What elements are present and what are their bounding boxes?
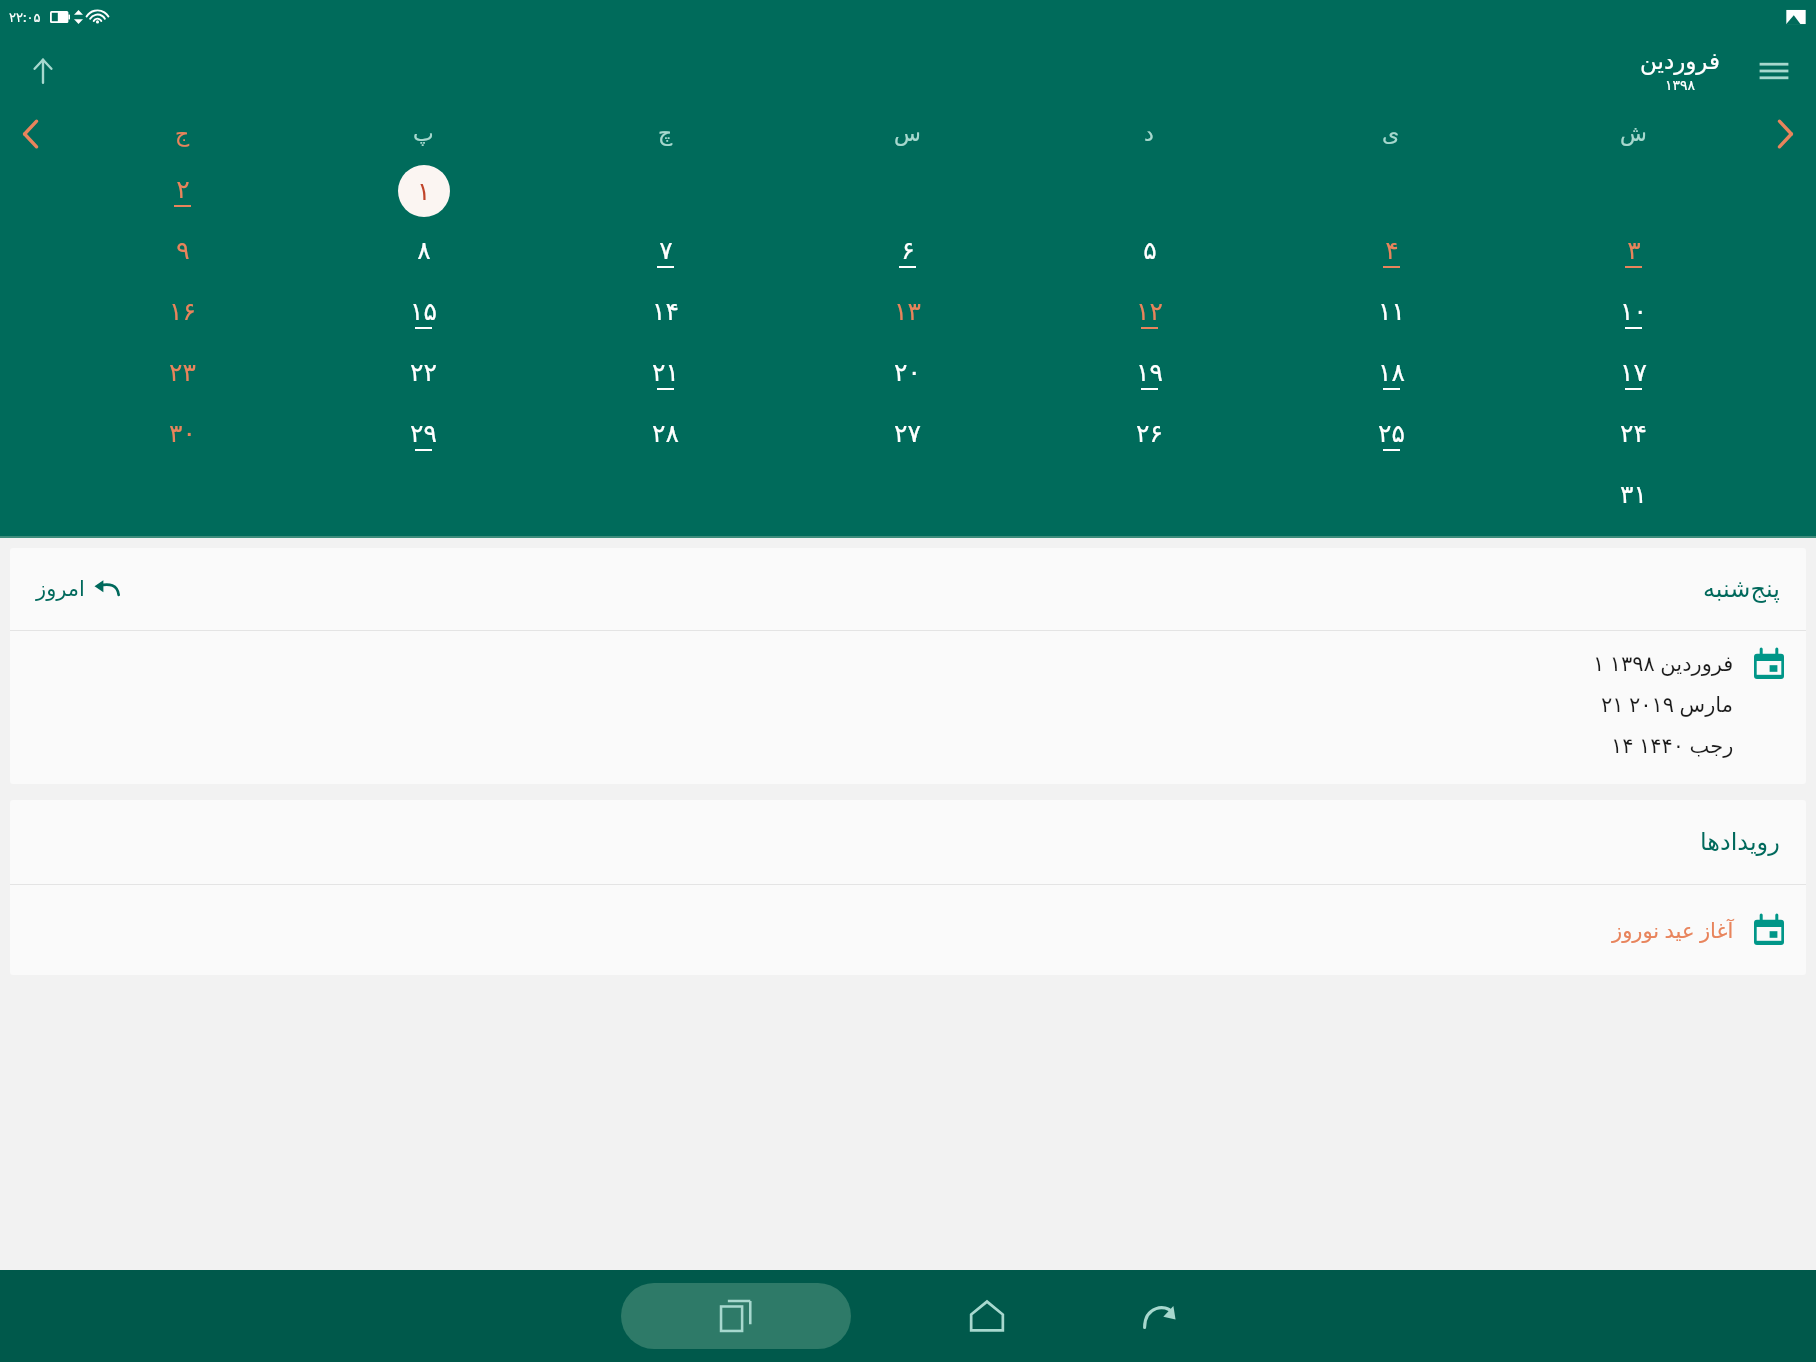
staticText: ی: [1382, 121, 1400, 147]
button[interactable]: ۲۳: [62, 343, 303, 404]
button[interactable]: ۹: [62, 221, 303, 282]
button[interactable]: Previous month: [0, 108, 62, 160]
button[interactable]: ۲۹: [303, 404, 544, 465]
button[interactable]: ۱۵: [303, 282, 544, 343]
staticText: پنج‌شنبه: [1703, 575, 1780, 603]
button[interactable]: ۱۶: [62, 282, 303, 343]
button[interactable]: ۱۷: [1512, 343, 1754, 404]
staticText: ۳: [1627, 236, 1641, 265]
button[interactable]: ۱۰: [1512, 282, 1754, 343]
button[interactable]: ۲۲: [303, 343, 544, 404]
button[interactable]: ۲۱: [544, 343, 786, 404]
staticText: ۵: [1143, 236, 1157, 265]
staticText: ۲۴: [1620, 419, 1647, 448]
button[interactable]: ۵: [1028, 221, 1270, 282]
staticText: ۱۵: [410, 297, 437, 326]
staticText: ۲۱ مارس ۲۰۱۹: [1601, 690, 1734, 719]
button[interactable]: ۴: [1270, 221, 1512, 282]
button[interactable]: Go to top: [20, 48, 66, 94]
staticText: ۲: [176, 175, 190, 204]
button[interactable]: ۱: [303, 160, 544, 221]
staticText: ۱۸: [1378, 358, 1405, 387]
button[interactable]: ۷: [544, 221, 786, 282]
staticText: امروز: [36, 577, 85, 601]
button[interactable]: ۲۸: [544, 404, 786, 465]
staticText: ۲۲: [410, 358, 437, 387]
button[interactable]: Recent apps: [621, 1283, 851, 1349]
staticText: ۱۱: [1378, 297, 1405, 326]
staticText: ۳۱: [1620, 480, 1647, 509]
button[interactable]: ۱۲: [1028, 282, 1270, 343]
button[interactable]: ۳۰: [62, 404, 303, 465]
staticText: ۲۷: [894, 419, 921, 448]
staticText: د: [1144, 121, 1154, 147]
staticText: ۱۹: [1136, 358, 1163, 387]
staticText: ۲۹: [410, 419, 437, 448]
button[interactable]: ۲۵: [1270, 404, 1512, 465]
staticText: چ: [658, 121, 673, 147]
button[interactable]: Home: [951, 1280, 1023, 1352]
staticText: ۴: [1385, 236, 1399, 265]
staticText: ش: [1620, 121, 1647, 147]
staticText: ۸: [417, 236, 431, 265]
staticText: ۲۳: [169, 358, 196, 387]
button[interactable]: ۱۴: [544, 282, 786, 343]
staticText: پ: [413, 121, 434, 147]
staticText: ۲۸: [652, 419, 679, 448]
button[interactable]: فروردین: [1640, 48, 1721, 93]
staticText: ۱۴: [652, 297, 679, 326]
staticText: آغاز عید نوروز: [1612, 916, 1734, 945]
staticText: ۱۲: [1136, 297, 1163, 326]
staticText: ۲۶: [1136, 419, 1163, 448]
button[interactable]: ۸: [303, 221, 544, 282]
button[interactable]: Back: [1123, 1280, 1195, 1352]
staticText: رویدادها: [1700, 828, 1780, 856]
button[interactable]: ۲: [62, 160, 303, 221]
staticText: ۱۷: [1620, 358, 1647, 387]
staticText: ۱: [417, 177, 431, 206]
staticText: ۳۰: [169, 419, 196, 448]
staticText: ۱۳: [894, 297, 921, 326]
staticText: فروردین: [1640, 48, 1721, 75]
staticText: س: [894, 121, 921, 147]
staticText: ۲۰: [894, 358, 921, 387]
button[interactable]: ۲۶: [1028, 404, 1270, 465]
button[interactable]: رویدادها: [10, 800, 1806, 975]
button[interactable]: آغاز عید نوروز: [10, 885, 1806, 975]
staticText: ج: [175, 121, 190, 147]
staticText: ۱۶: [169, 297, 196, 326]
button[interactable]: Next month: [1754, 108, 1816, 160]
staticText: ۷: [659, 236, 673, 265]
button[interactable]: ۲۷: [786, 404, 1028, 465]
button[interactable]: امروز: [36, 577, 120, 601]
button[interactable]: پنج‌شنبه: [10, 548, 1806, 784]
staticText: ۱ فروردین ۱۳۹۸: [1593, 649, 1734, 678]
button[interactable]: ۳: [1512, 221, 1754, 282]
button[interactable]: ۲۰: [786, 343, 1028, 404]
button[interactable]: ۶: [786, 221, 1028, 282]
button[interactable]: ۳۱: [1512, 465, 1754, 526]
staticText: ۹: [176, 236, 190, 265]
button[interactable]: ۱۳: [786, 282, 1028, 343]
button[interactable]: Menu: [1748, 45, 1800, 97]
button[interactable]: ۱۱: [1270, 282, 1512, 343]
staticText: ۱۳۹۸: [1665, 77, 1696, 93]
staticText: ۲۲:۰۵: [9, 8, 41, 26]
staticText: ۱۰: [1620, 297, 1647, 326]
staticText: ۲۱: [652, 358, 679, 387]
button[interactable]: ۱۹: [1028, 343, 1270, 404]
button[interactable]: ۱۸: [1270, 343, 1512, 404]
staticText: ۱۴ رجب ۱۴۴۰: [1611, 731, 1734, 760]
staticText: ۶: [901, 236, 915, 265]
button[interactable]: ۲۴: [1512, 404, 1754, 465]
staticText: ۲۵: [1378, 419, 1405, 448]
